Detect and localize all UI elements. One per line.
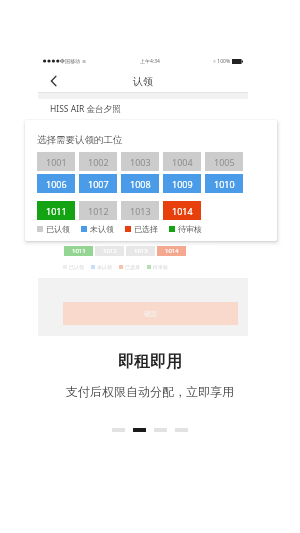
- staticText: 已认领: [46, 224, 70, 234]
- button[interactable]: 1012: [79, 201, 117, 220]
- button[interactable]: 1003: [121, 152, 159, 171]
- button[interactable]: 已认领: [37, 224, 70, 234]
- staticText: 1001: [46, 156, 67, 168]
- button[interactable]: 1009: [163, 174, 201, 193]
- button[interactable]: 1011: [37, 201, 75, 220]
- staticText: 1006: [46, 178, 67, 190]
- staticText: 1011: [46, 205, 67, 217]
- button[interactable]: 1008: [121, 174, 159, 193]
- button[interactable]: 1006: [37, 174, 75, 193]
- button[interactable]: Back: [38, 69, 68, 93]
- button[interactable]: 1007: [79, 174, 117, 193]
- staticText: 待审核: [153, 264, 168, 270]
- staticText: 1013: [130, 205, 151, 217]
- staticText: 1007: [88, 178, 109, 190]
- staticText: 即租即用: [118, 352, 182, 372]
- staticText: 1004: [172, 156, 193, 168]
- staticText: ⌾ 100%: [213, 58, 231, 65]
- button[interactable]: 未认领: [81, 224, 114, 234]
- staticText: 未认领: [90, 224, 114, 234]
- staticText: 1010: [214, 178, 235, 190]
- staticText: HISS AIR 金台夕照: [50, 103, 121, 115]
- staticText: ≋: [82, 58, 87, 64]
- button[interactable]: 待审核: [169, 224, 202, 234]
- button[interactable]: 1001: [37, 152, 75, 171]
- staticText: 1009: [172, 178, 193, 190]
- staticText: 确定: [144, 309, 158, 318]
- button[interactable]: 1013: [121, 201, 159, 220]
- button[interactable]: 1010: [205, 174, 243, 193]
- staticText: 上午4:34: [140, 58, 160, 65]
- button[interactable]: 1014: [163, 201, 201, 220]
- staticText: 已认领: [69, 264, 84, 270]
- staticText: 1002: [88, 156, 109, 168]
- staticText: 1014: [172, 205, 193, 217]
- staticText: 已选择: [125, 264, 140, 270]
- staticText: 中国移动: [60, 58, 80, 64]
- staticText: 待审核: [178, 224, 202, 234]
- staticText: 1011: [72, 247, 86, 255]
- staticText: 1013: [134, 247, 148, 255]
- staticText: 1003: [130, 156, 151, 168]
- staticText: 支付后权限自动分配，立即享用: [66, 384, 234, 399]
- button[interactable]: HISS AIR 金台夕照: [38, 99, 248, 119]
- button[interactable]: 1005: [205, 152, 243, 171]
- button[interactable]: 1004: [163, 152, 201, 171]
- button[interactable]: 1002: [79, 152, 117, 171]
- staticText: 认领: [133, 75, 153, 88]
- staticText: 选择需要认领的工位: [37, 134, 123, 146]
- staticText: 1012: [103, 247, 117, 255]
- staticText: 已选择: [134, 224, 158, 234]
- staticText: 1005: [214, 156, 235, 168]
- staticText: 1008: [130, 178, 151, 190]
- staticText: 1012: [88, 205, 109, 217]
- button[interactable]: 已选择: [125, 224, 158, 234]
- staticText: 1014: [165, 247, 179, 255]
- staticText: 未认领: [97, 264, 112, 270]
